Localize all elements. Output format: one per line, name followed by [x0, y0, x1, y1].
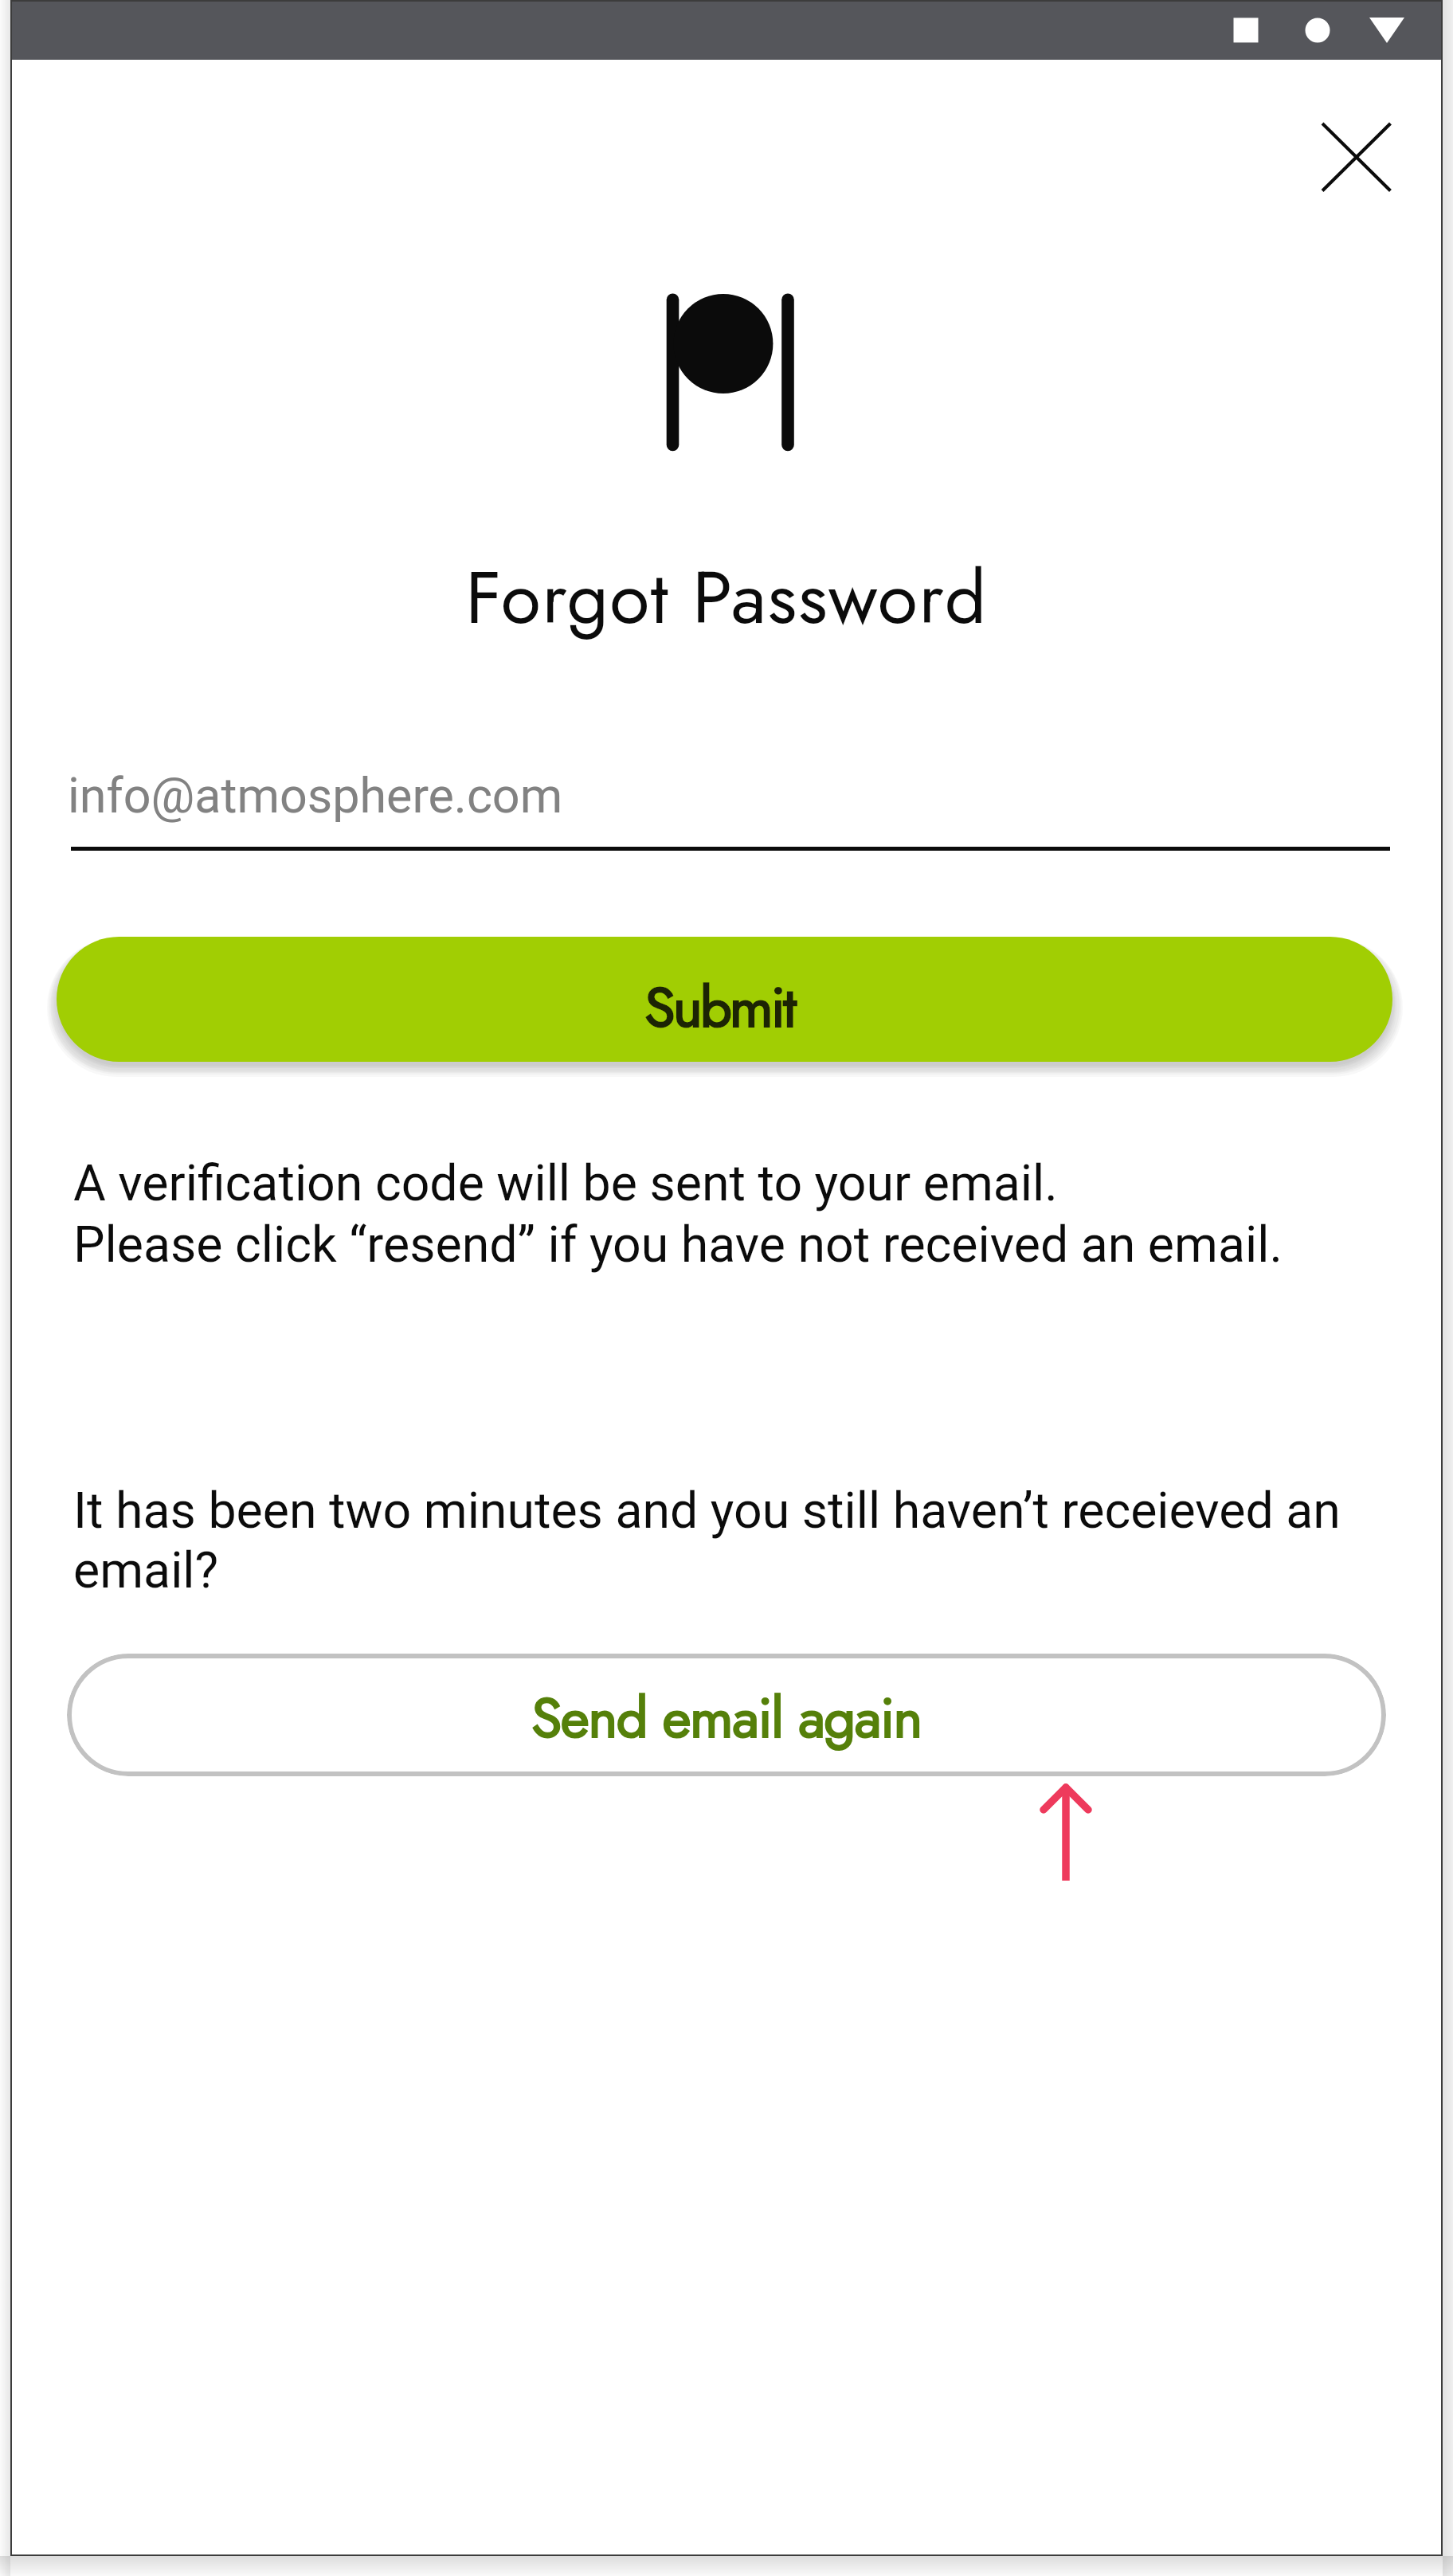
staticText: It has been two minutes and you still ha…: [73, 1482, 1396, 1600]
button[interactable]: Submit: [57, 937, 1392, 1062]
staticText: Submit: [644, 967, 795, 1048]
staticText: Send email again: [531, 1678, 922, 1758]
staticText: Forgot Password: [10, 545, 1443, 650]
button[interactable]: Send email again: [67, 1654, 1386, 1776]
button[interactable]: info@atmosphere.com: [71, 767, 1390, 851]
staticText: info@atmosphere.com: [68, 767, 563, 824]
staticText: A verification code will be sent to your…: [73, 1154, 1428, 1274]
button[interactable]: Close: [1306, 108, 1405, 206]
